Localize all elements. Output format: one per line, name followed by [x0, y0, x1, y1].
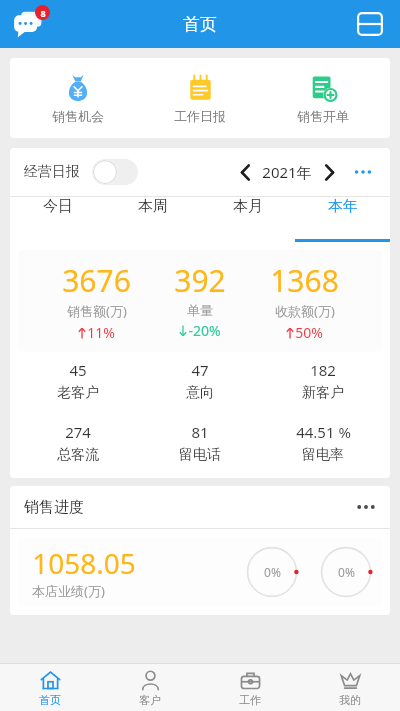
staticText: 意向 — [186, 384, 214, 402]
staticText: 274 — [65, 422, 91, 442]
staticText: 8 — [40, 7, 46, 19]
staticText: 留电话 — [179, 446, 221, 464]
staticText: 经营日报 — [24, 163, 80, 181]
staticText: 50% — [295, 323, 323, 342]
button[interactable]: 本周 — [105, 197, 200, 216]
staticText: 销售进度 — [24, 498, 84, 517]
staticText: 收款额(万) — [275, 302, 335, 320]
staticText: 今日 — [43, 197, 73, 216]
button[interactable]: 本月 — [200, 197, 295, 216]
staticText: 工作日报 — [174, 108, 226, 124]
button[interactable]: 工作日报 — [145, 73, 255, 124]
staticText: 47 — [191, 360, 209, 380]
staticText: 单量 — [187, 302, 213, 318]
staticText: 留电率 — [302, 446, 344, 464]
staticText: 0% — [338, 564, 355, 580]
staticText: 本店业绩(万) — [32, 582, 105, 600]
button[interactable]: 客户 — [100, 669, 200, 707]
button[interactable]: More options — [350, 159, 376, 185]
staticText: 销售开单 — [297, 108, 349, 124]
staticText: 工作 — [239, 693, 261, 707]
button[interactable]: 我的 — [300, 669, 400, 707]
button[interactable]: Toggle daily report — [92, 159, 138, 185]
staticText: 本月 — [233, 197, 263, 216]
staticText: 44.51 % — [296, 422, 351, 442]
staticText: 首页 — [183, 14, 217, 35]
staticText: 新客户 — [302, 384, 344, 402]
button[interactable]: Layout — [350, 4, 390, 44]
staticText: 总客流 — [57, 446, 99, 464]
staticText: 81 — [191, 422, 209, 442]
staticText: 1368 — [270, 260, 339, 301]
staticText: 销售额(万) — [67, 302, 127, 320]
button[interactable]: Previous year — [232, 159, 258, 185]
staticText: 本年 — [328, 197, 358, 216]
button[interactable]: 本年 — [295, 197, 390, 216]
button[interactable]: Next year — [316, 159, 342, 185]
button[interactable]: 工作 — [200, 669, 300, 707]
staticText: 老客户 — [57, 384, 99, 402]
staticText: 1058.05 — [32, 544, 136, 582]
staticText: 首页 — [39, 693, 61, 707]
staticText: 11% — [87, 323, 115, 342]
staticText: 45 — [69, 360, 87, 380]
staticText: 2021年 — [262, 162, 312, 182]
button[interactable]: 首页 — [0, 669, 100, 707]
button[interactable]: Messages — [8, 2, 52, 46]
button[interactable]: 销售开单 — [268, 73, 378, 124]
staticText: 销售机会 — [52, 108, 104, 124]
button[interactable]: 销售进度 — [24, 486, 376, 528]
button[interactable]: 销售机会 — [23, 73, 133, 124]
staticText: 我的 — [339, 693, 361, 707]
button[interactable]: 今日 — [10, 197, 105, 216]
staticText: 3676 — [62, 260, 131, 301]
staticText: 182 — [310, 360, 336, 380]
staticText: 本周 — [138, 197, 168, 216]
staticText: 客户 — [139, 693, 161, 707]
staticText: 0% — [264, 564, 281, 580]
staticText: 392 — [174, 260, 226, 301]
staticText: -20% — [188, 321, 221, 340]
